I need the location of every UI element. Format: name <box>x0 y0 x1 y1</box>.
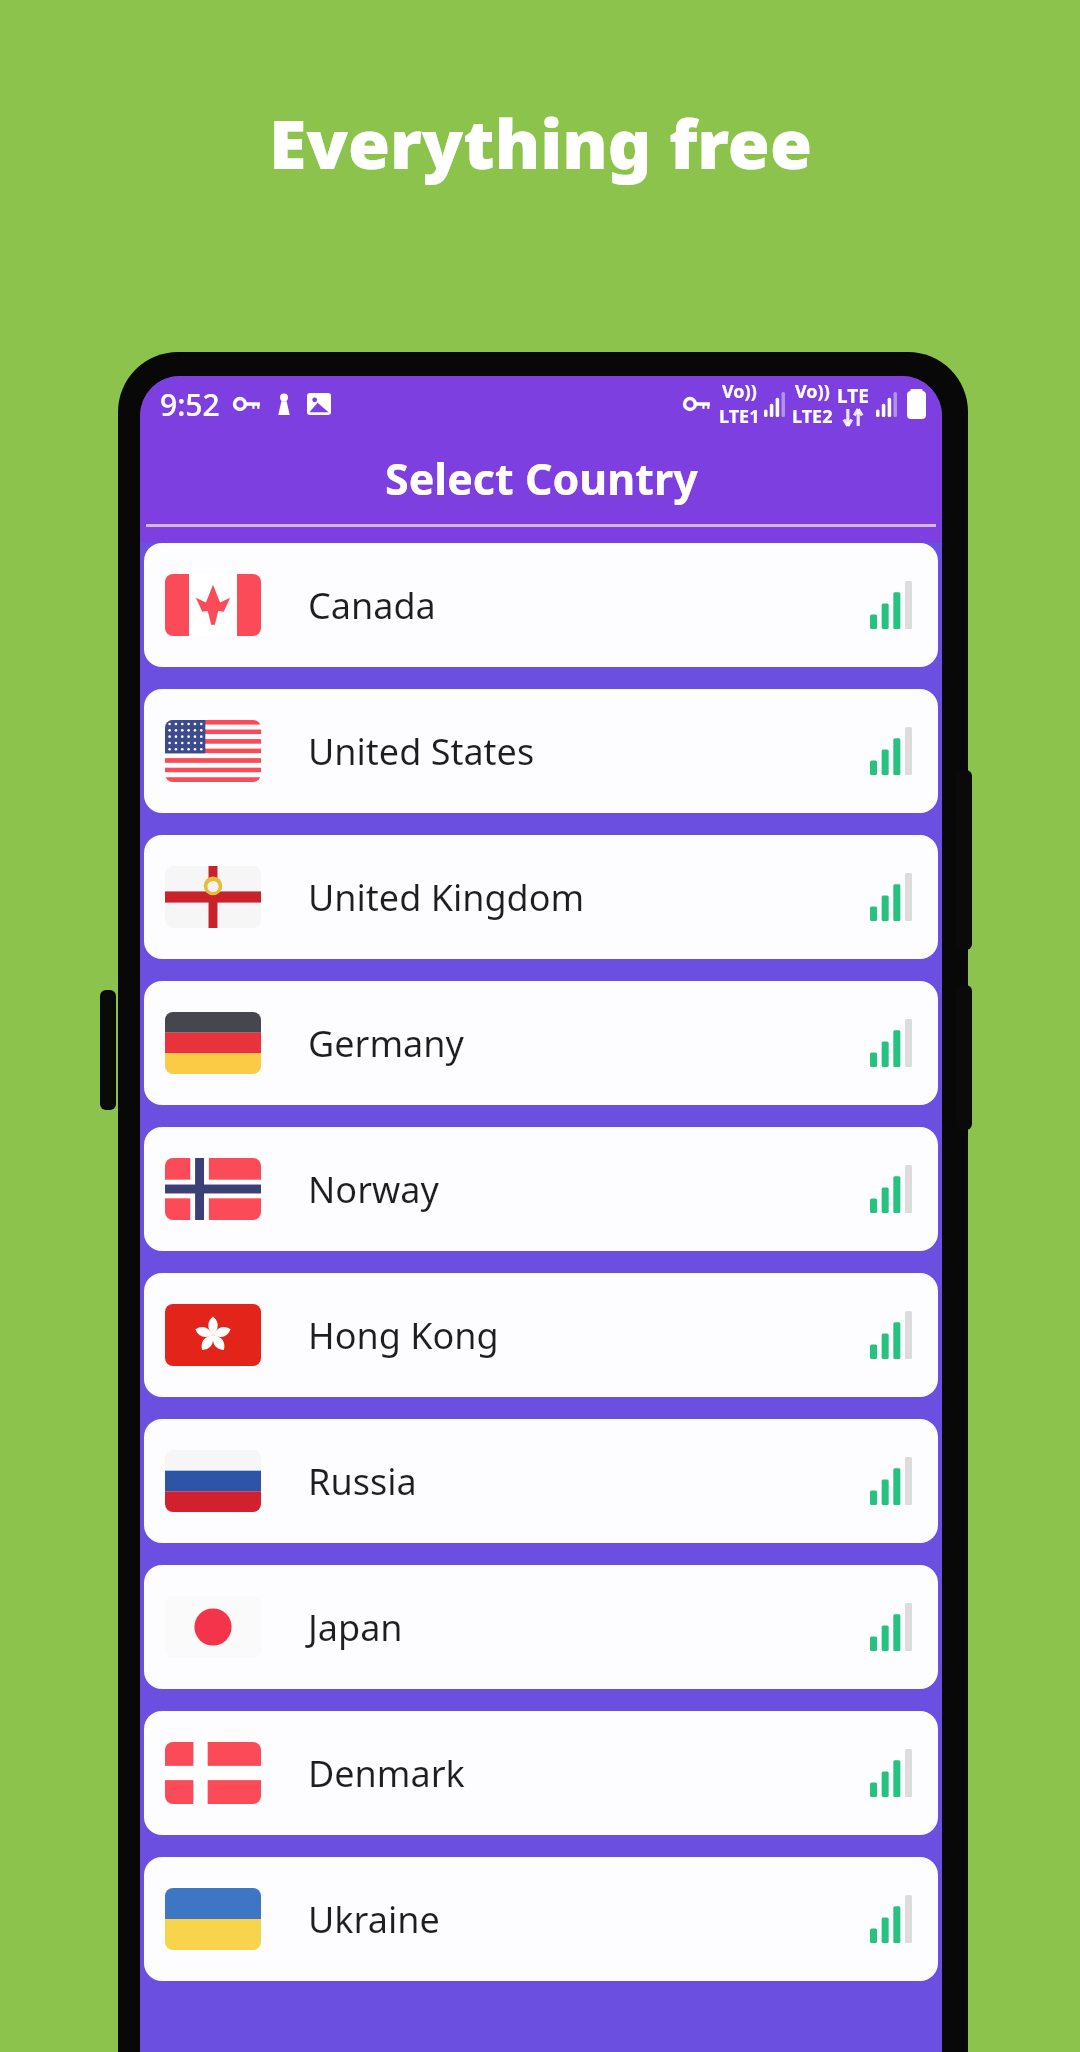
staticText: Select Country <box>385 449 698 508</box>
other: Signal strength <box>870 873 912 921</box>
staticText: Everything free <box>269 96 812 189</box>
staticText: Germany <box>308 1019 464 1068</box>
other: Signal strength <box>870 1457 912 1505</box>
staticText: Ukraine <box>308 1895 440 1944</box>
other: Signal strength <box>870 1019 912 1067</box>
staticText: United States <box>308 727 535 776</box>
staticText: Canada <box>308 581 436 630</box>
other: Signal strength <box>870 1603 912 1651</box>
staticText: LTE2 <box>792 404 833 429</box>
other: Signal strength <box>870 581 912 629</box>
other: Signal strength <box>870 1749 912 1797</box>
staticText: LTE1 <box>719 404 760 429</box>
button[interactable]: Canada <box>144 543 938 667</box>
button[interactable]: Hong Kong <box>144 1273 938 1397</box>
button[interactable]: Ukraine <box>144 1857 938 1981</box>
staticText: Denmark <box>308 1749 465 1798</box>
staticText: Russia <box>308 1457 417 1506</box>
staticText: Vo)) <box>722 379 757 404</box>
staticText: United Kingdom <box>308 873 585 922</box>
button[interactable]: United Kingdom <box>144 835 938 959</box>
staticText: Japan <box>308 1603 403 1652</box>
staticText: LTE <box>837 383 869 409</box>
button[interactable]: United States <box>144 689 938 813</box>
staticText: Norway <box>308 1165 439 1214</box>
other: Signal strength <box>870 1895 912 1943</box>
button[interactable]: Denmark <box>144 1711 938 1835</box>
staticText: Hong Kong <box>308 1311 499 1360</box>
other: Signal strength <box>870 1165 912 1213</box>
button[interactable]: Russia <box>144 1419 938 1543</box>
button[interactable]: Norway <box>144 1127 938 1251</box>
staticText: Vo)) <box>795 379 830 404</box>
button[interactable]: Germany <box>144 981 938 1105</box>
other: Signal strength <box>870 1311 912 1359</box>
other: Signal strength <box>870 727 912 775</box>
button[interactable]: Japan <box>144 1565 938 1689</box>
staticText: 9:52 <box>160 384 220 425</box>
